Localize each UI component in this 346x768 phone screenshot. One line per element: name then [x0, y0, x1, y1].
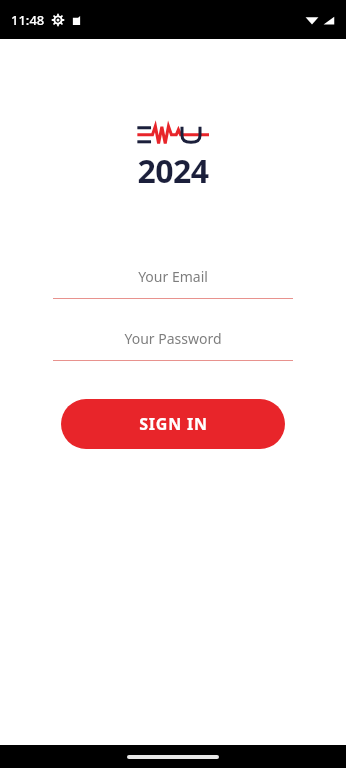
other: Home gesture bar [127, 755, 219, 759]
staticText: Your Email [138, 267, 208, 286]
staticText: Your Password [124, 329, 222, 348]
staticText: SIGN IN [139, 413, 208, 435]
button[interactable]: SIGN IN [61, 399, 285, 449]
button[interactable]: Your Email [53, 261, 293, 299]
button[interactable]: Your Password [53, 323, 293, 361]
staticText: 11:48 [11, 11, 45, 29]
staticText: 2024 [137, 149, 209, 193]
